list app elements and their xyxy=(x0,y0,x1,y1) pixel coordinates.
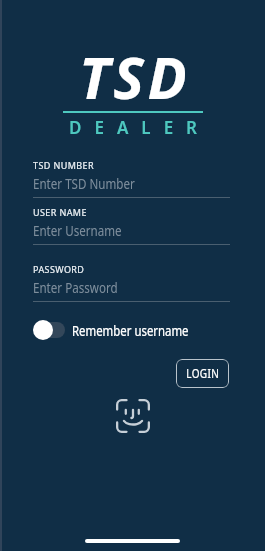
staticText: Enter Username xyxy=(33,220,122,240)
button[interactable]: LOGIN xyxy=(176,359,229,388)
button[interactable]: Remember username xyxy=(33,320,226,340)
staticText: LOGIN xyxy=(186,365,220,382)
staticText: TSD xyxy=(79,37,191,116)
button[interactable]: TSD NUMBER xyxy=(33,159,230,199)
staticText: DEALER xyxy=(69,116,211,139)
staticText: Enter Password xyxy=(33,277,118,297)
staticText: PASSWORD xyxy=(33,263,85,275)
button[interactable]: PASSWORD xyxy=(33,263,230,303)
staticText: Remember username xyxy=(72,320,189,340)
button[interactable]: USER NAME xyxy=(33,206,230,246)
staticText: Enter TSD Number xyxy=(33,173,135,193)
staticText: TSD NUMBER xyxy=(33,159,94,171)
button[interactable] xyxy=(116,399,150,433)
staticText: USER NAME xyxy=(33,206,87,218)
